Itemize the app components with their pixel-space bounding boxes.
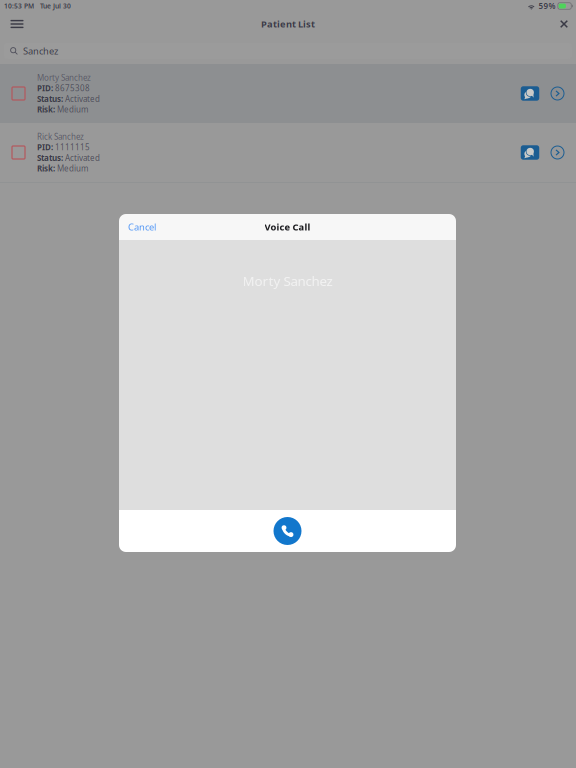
staticText: 1111115 [55, 142, 90, 152]
staticText: Risk: [37, 163, 57, 174]
staticText: PID: [37, 83, 55, 93]
button[interactable]: Message Rick Sanchez [515, 132, 545, 172]
staticText: Sanchez [23, 45, 58, 57]
staticText: Morty Sanchez [37, 72, 91, 83]
staticText: Patient List [261, 18, 315, 30]
staticText: 59% [538, 1, 555, 11]
button[interactable]: Open Rick Sanchez [545, 132, 576, 172]
staticText: Tue Jul 30 [34, 2, 71, 10]
staticText: Risk: [37, 104, 57, 115]
staticText: Cancel [128, 221, 156, 233]
staticText: 8675308 [55, 83, 90, 93]
button[interactable]: Select Rick Sanchez [0, 129, 37, 175]
staticText: Activated [65, 93, 100, 104]
button[interactable]: Menu [2, 12, 32, 36]
staticText: Voice Call [264, 221, 310, 233]
staticText: Status: [37, 93, 65, 104]
staticText: Status: [37, 152, 65, 163]
button[interactable]: Cancel [119, 214, 165, 240]
button[interactable]: Message Morty Sanchez [515, 73, 545, 113]
button[interactable]: Call [273, 517, 301, 545]
staticText: Rick Sanchez [37, 131, 84, 142]
staticText: 10:53 PM [4, 2, 34, 10]
staticText: Medium [57, 163, 88, 174]
staticText: Activated [65, 152, 100, 163]
button[interactable]: Select Morty Sanchez [0, 70, 37, 116]
button[interactable]: Close [553, 12, 575, 36]
button[interactable]: Search [0, 40, 576, 64]
staticText: Medium [57, 104, 88, 115]
staticText: Morty Sanchez [242, 272, 332, 290]
staticText: PID: [37, 142, 55, 152]
button[interactable]: Open Morty Sanchez [545, 73, 576, 113]
